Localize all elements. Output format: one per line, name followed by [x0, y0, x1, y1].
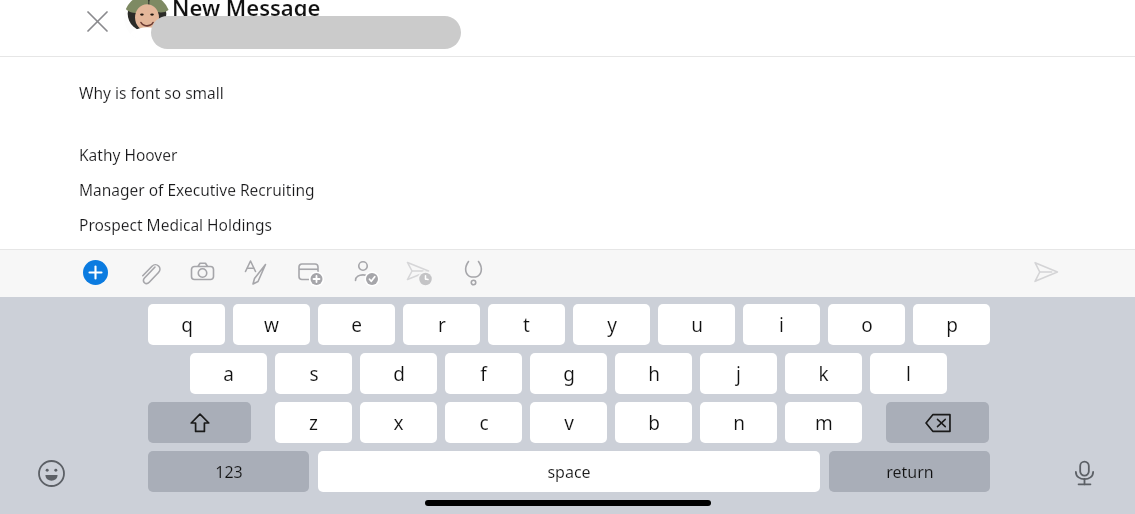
- staticText: Prospect Medical Holdings: [79, 214, 273, 235]
- button[interactable]: Markup: [236, 252, 276, 292]
- button[interactable]: n: [700, 402, 777, 443]
- button[interactable]: v: [530, 402, 607, 443]
- button[interactable]: Camera: [182, 252, 222, 292]
- button[interactable]: s: [275, 353, 352, 394]
- staticText: x: [393, 410, 404, 436]
- button[interactable]: c: [445, 402, 522, 443]
- button[interactable]: Profile photo: [124, 0, 170, 41]
- staticText: 123: [215, 461, 243, 483]
- button[interactable]: Add attachment: [75, 252, 115, 292]
- staticText: n: [733, 410, 745, 436]
- staticText: v: [564, 410, 574, 436]
- staticText: q: [181, 312, 193, 338]
- button[interactable]: z: [275, 402, 352, 443]
- button[interactable]: k: [785, 353, 862, 394]
- button[interactable]: w: [233, 304, 310, 345]
- button[interactable]: Send later: [399, 252, 439, 292]
- button[interactable]: y: [573, 304, 650, 345]
- staticText: t: [523, 312, 530, 338]
- button[interactable]: h: [615, 353, 692, 394]
- button[interactable]: Backspace: [886, 402, 989, 443]
- button[interactable]: Shift: [148, 402, 251, 443]
- staticText: s: [309, 361, 319, 387]
- staticText: r: [438, 312, 446, 338]
- staticText: c: [479, 410, 489, 436]
- button[interactable]: b: [615, 402, 692, 443]
- button[interactable]: a: [190, 353, 267, 394]
- button[interactable]: l: [870, 353, 947, 394]
- staticText: h: [648, 361, 660, 387]
- button[interactable]: space: [318, 451, 820, 492]
- button[interactable]: p: [913, 304, 990, 345]
- button[interactable]: 123: [148, 451, 309, 492]
- button[interactable]: Send: [1026, 252, 1066, 292]
- staticText: z: [309, 410, 318, 436]
- button[interactable]: Priority: [453, 252, 493, 292]
- button[interactable]: j: [700, 353, 777, 394]
- staticText: y: [607, 312, 617, 338]
- button[interactable]: Attach file: [129, 252, 169, 292]
- button[interactable]: g: [530, 353, 607, 394]
- staticText: l: [906, 361, 911, 387]
- staticText: p: [946, 312, 958, 338]
- staticText: Kathy Hoover: [79, 144, 178, 165]
- button[interactable]: Emoji: [30, 452, 72, 494]
- staticText: f: [480, 361, 487, 387]
- button[interactable]: t: [488, 304, 565, 345]
- staticText: g: [563, 361, 575, 387]
- staticText: o: [861, 312, 873, 338]
- staticText: return: [886, 461, 934, 483]
- button[interactable]: q: [148, 304, 225, 345]
- button[interactable]: return: [829, 451, 990, 492]
- staticText: Why is font so small: [79, 82, 224, 103]
- staticText: u: [691, 312, 703, 338]
- button[interactable]: x: [360, 402, 437, 443]
- button[interactable]: Dictation: [1063, 452, 1105, 494]
- button[interactable]: d: [360, 353, 437, 394]
- staticText: space: [547, 461, 591, 483]
- button[interactable]: r: [403, 304, 480, 345]
- button[interactable]: u: [658, 304, 735, 345]
- staticText: k: [818, 361, 829, 387]
- button[interactable]: i: [743, 304, 820, 345]
- staticText: d: [393, 361, 405, 387]
- button[interactable]: Add contact: [345, 252, 385, 292]
- staticText: m: [815, 410, 833, 436]
- staticText: Manager of Executive Recruiting: [79, 179, 315, 200]
- button[interactable]: e: [318, 304, 395, 345]
- staticText: a: [223, 361, 234, 387]
- staticText: i: [779, 312, 784, 338]
- button[interactable]: Close: [78, 2, 116, 40]
- button[interactable]: Add card: [290, 252, 330, 292]
- button[interactable]: m: [785, 402, 862, 443]
- staticText: w: [264, 312, 279, 338]
- button[interactable]: f: [445, 353, 522, 394]
- button[interactable]: o: [828, 304, 905, 345]
- staticText: New Message: [172, 0, 321, 22]
- staticText: e: [351, 312, 362, 338]
- staticText: b: [648, 410, 660, 436]
- staticText: j: [736, 361, 741, 387]
